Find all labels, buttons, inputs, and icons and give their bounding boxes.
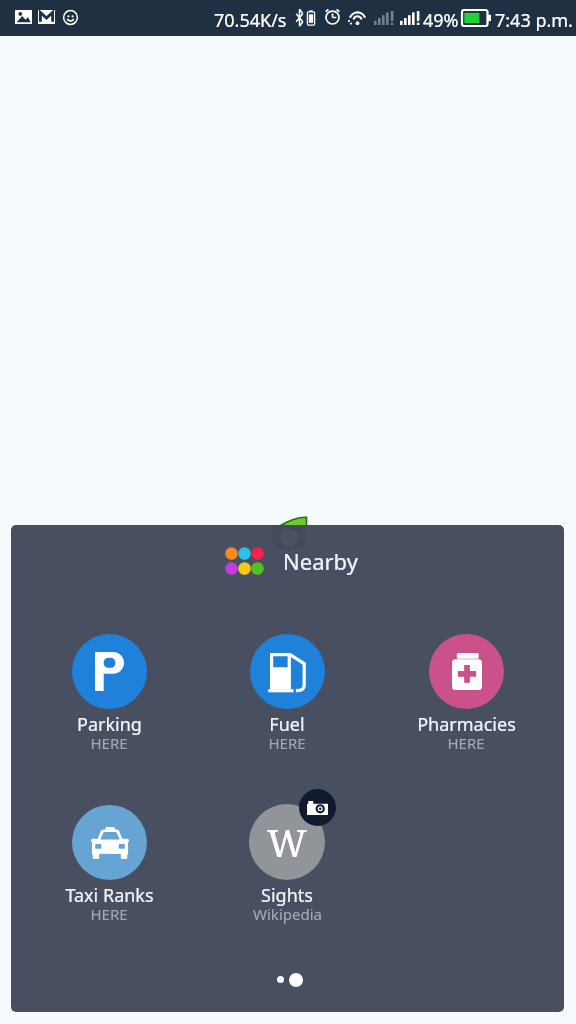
staticText: HERE bbox=[268, 733, 306, 753]
button[interactable]: Camera bbox=[299, 789, 336, 826]
button[interactable]: Page 2 bbox=[289, 973, 303, 987]
staticText: Pharmacies bbox=[417, 712, 516, 737]
button[interactable]: W bbox=[197, 804, 377, 928]
staticText: Parking bbox=[77, 712, 142, 737]
staticText: W bbox=[267, 816, 307, 868]
staticText: HERE bbox=[447, 733, 485, 753]
button[interactable]: Taxi Ranks bbox=[19, 804, 199, 928]
staticText: 49% bbox=[423, 8, 459, 33]
staticText: HERE bbox=[90, 904, 128, 924]
staticText: HERE bbox=[90, 733, 128, 753]
staticText: Wikipedia bbox=[253, 904, 322, 924]
staticText: Sights bbox=[261, 883, 313, 908]
button[interactable]: Parking bbox=[19, 633, 199, 757]
staticText: 7:43 p.m. bbox=[495, 8, 573, 33]
button[interactable]: Pharmacies bbox=[376, 633, 556, 757]
button[interactable]: Page 1 bbox=[277, 976, 284, 983]
staticText: Fuel bbox=[269, 712, 305, 737]
button[interactable]: Fuel bbox=[197, 633, 377, 757]
staticText: Taxi Ranks bbox=[65, 883, 154, 908]
staticText: Nearby bbox=[283, 546, 358, 576]
staticText: 70.54K/s bbox=[214, 8, 287, 33]
